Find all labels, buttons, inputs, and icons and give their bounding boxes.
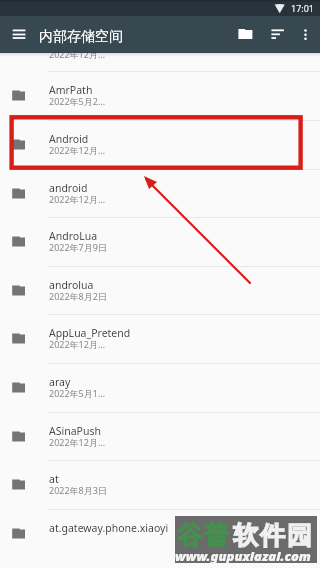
button[interactable]: Android [0,120,320,169]
button[interactable]: at [0,460,320,509]
button[interactable]: More options [292,23,320,45]
staticText: www.gupuxlazal.com [175,547,311,565]
staticText: 2022年12月… [49,144,106,156]
staticText: 2022年8月3日 [49,484,107,496]
staticText: Android [49,132,89,146]
button[interactable]: androlua [0,266,320,315]
staticText: ASinaPush [49,424,101,438]
staticText: 2022年7月9日 [49,241,107,253]
staticText: AmrPath [49,83,93,97]
button[interactable]: AmrPath [0,71,320,120]
button[interactable]: ASinaPush [0,412,320,461]
button[interactable]: AppLua_Pretend [0,314,320,363]
staticText: 软件园 [232,520,313,551]
staticText: 谷普 [176,520,230,551]
button[interactable]: AndroLua [0,217,320,266]
button[interactable]: Navigation menu [4,26,34,42]
staticText: aray [49,375,71,389]
button[interactable]: at.gateway.phone.xiaoyi [0,509,320,558]
staticText: 2022年8月2日 [49,290,107,302]
staticText: 内部存储空间 [39,28,123,46]
staticText: 2022年5月2… [49,95,106,107]
staticText: at.gateway.phone.xiaoyi [49,521,169,535]
staticText: at [49,472,59,486]
button[interactable]: Sort [262,23,290,45]
staticText: 2022年12月… [49,436,106,448]
staticText: 17:01 [291,2,315,14]
staticText: 2022年12月… [49,338,106,350]
staticText: AppLua_Pretend [49,326,131,340]
staticText: AndroLua [49,229,98,243]
staticText: 2022年5月1… [49,387,106,399]
staticText: 2022年12月… [49,48,106,60]
button[interactable]: aray [0,363,320,412]
staticText: 2022年12月… [49,193,106,205]
staticText: androlua [49,278,94,292]
button[interactable]: android [0,169,320,218]
staticText: android [49,181,88,195]
button[interactable]: New folder [232,23,260,45]
